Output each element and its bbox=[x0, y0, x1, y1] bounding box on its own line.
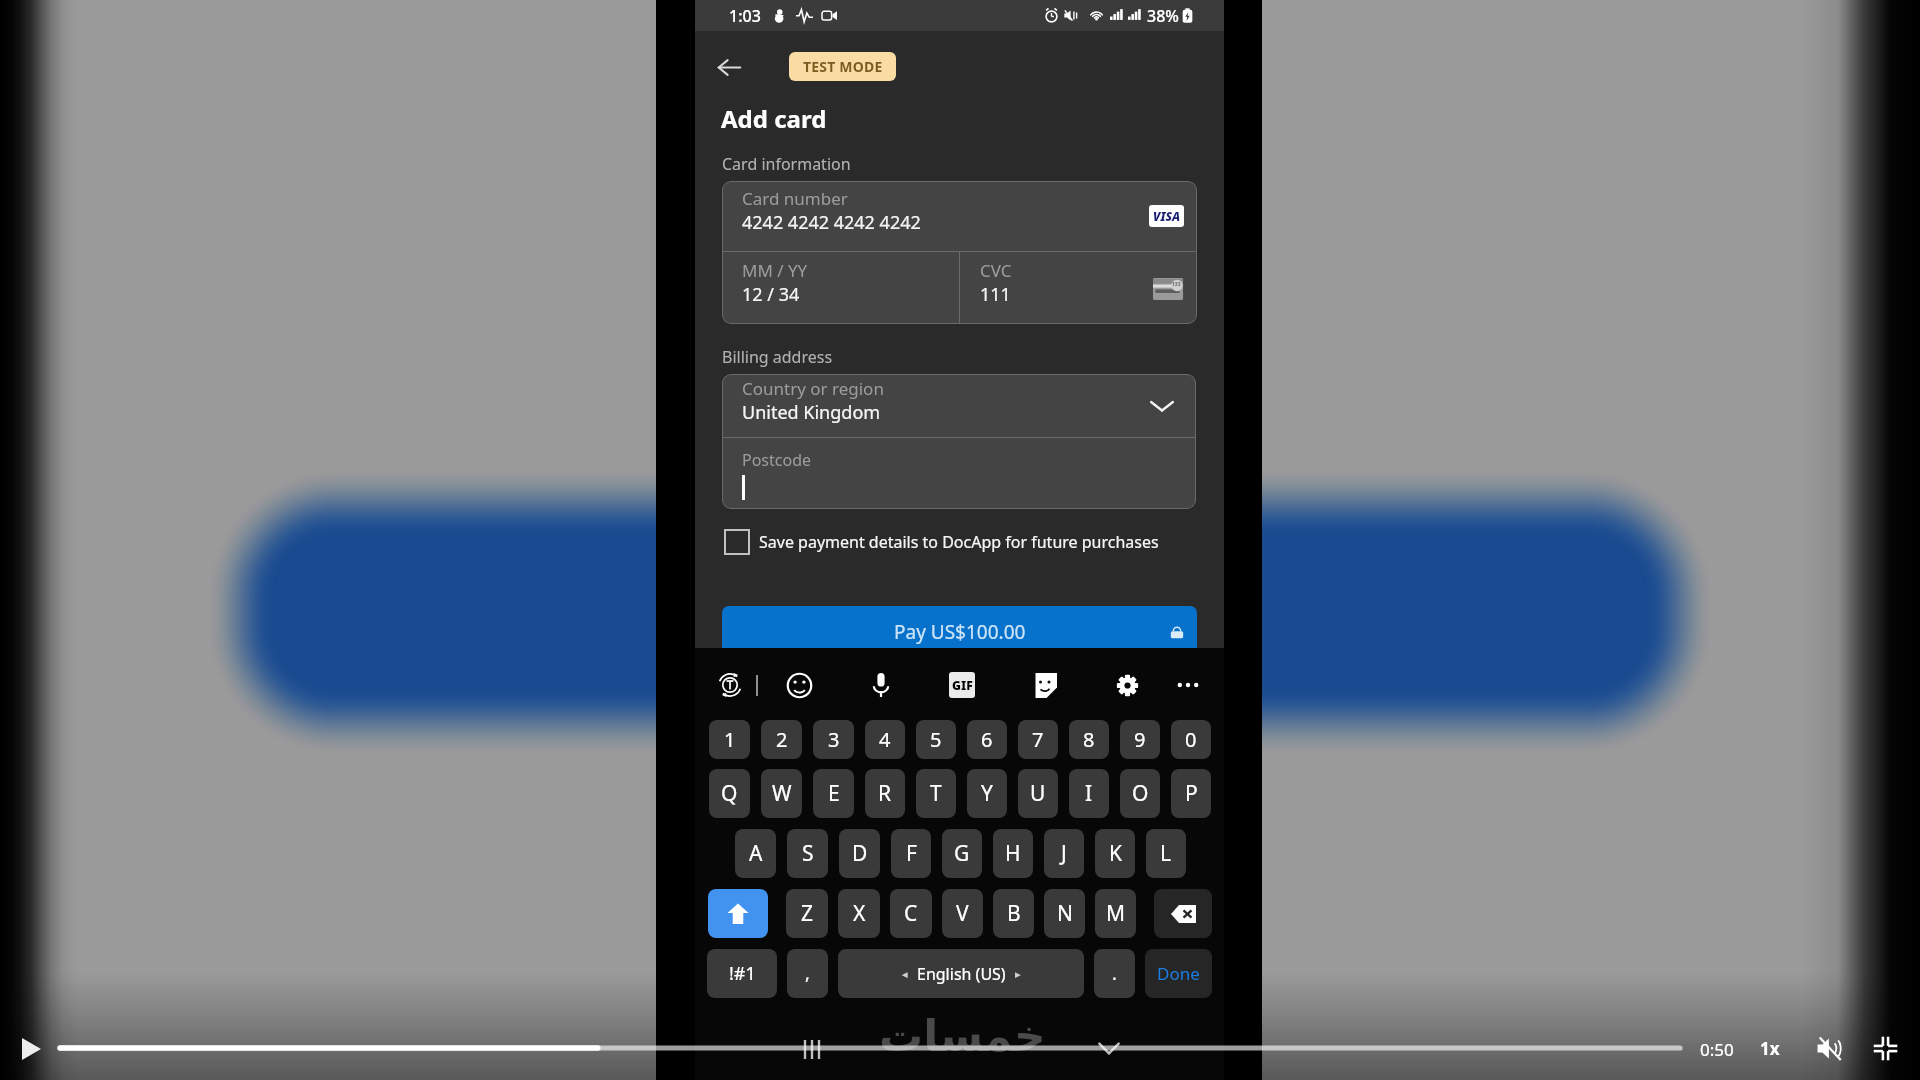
button[interactable]: K bbox=[1095, 829, 1135, 878]
button[interactable]: Shift bbox=[708, 889, 768, 938]
staticText: 7 bbox=[1032, 726, 1044, 753]
staticText: 1 bbox=[724, 726, 736, 753]
button[interactable]: C bbox=[890, 889, 932, 938]
staticText: 9 bbox=[1134, 726, 1146, 753]
button[interactable]: X bbox=[838, 889, 880, 938]
button[interactable]: 3 bbox=[813, 720, 854, 759]
staticText: N bbox=[1057, 899, 1073, 928]
staticText: K bbox=[1109, 839, 1122, 868]
button[interactable]: J bbox=[1044, 829, 1084, 878]
button[interactable]: B bbox=[993, 889, 1034, 938]
button[interactable]: TEST MODE bbox=[789, 52, 896, 81]
staticText: Y bbox=[981, 779, 993, 808]
staticText: 0 bbox=[1185, 726, 1197, 753]
button[interactable]: GIF bbox=[949, 672, 975, 698]
staticText: G bbox=[954, 839, 970, 868]
button[interactable]: E bbox=[813, 769, 854, 818]
button[interactable]: More options bbox=[1172, 669, 1204, 701]
button[interactable]: U bbox=[1018, 769, 1058, 818]
staticText: E bbox=[828, 779, 840, 808]
staticText: Save payment details to DocApp for futur… bbox=[759, 531, 1159, 553]
staticText: W bbox=[772, 779, 792, 808]
staticText: !#1 bbox=[729, 961, 756, 986]
button[interactable]: Unmute bbox=[1813, 1031, 1847, 1065]
button[interactable]: 1 bbox=[709, 720, 750, 759]
button[interactable]: Postcode bbox=[722, 438, 1196, 509]
button[interactable]: Y bbox=[967, 769, 1007, 818]
button[interactable]: L bbox=[1146, 829, 1186, 878]
staticText: C bbox=[904, 899, 918, 928]
button[interactable]: D bbox=[839, 829, 880, 878]
button[interactable]: N bbox=[1044, 889, 1085, 938]
button[interactable]: Q bbox=[709, 769, 750, 818]
button[interactable]: !#1 bbox=[707, 949, 777, 998]
staticText: Q bbox=[721, 779, 738, 808]
button[interactable]: H bbox=[993, 829, 1033, 878]
button[interactable]: MM / YY bbox=[722, 252, 959, 324]
button[interactable]: 2 bbox=[761, 720, 802, 759]
button[interactable]: 8 bbox=[1069, 720, 1109, 759]
staticText: United Kingdom bbox=[742, 400, 881, 425]
staticText: VISA bbox=[1153, 208, 1181, 224]
button[interactable]: M bbox=[1095, 889, 1136, 938]
button[interactable]: O bbox=[1120, 769, 1160, 818]
button[interactable]: Card number bbox=[722, 181, 1197, 251]
staticText: H bbox=[1005, 839, 1021, 868]
staticText: خمسات bbox=[879, 1010, 1046, 1061]
button[interactable]: W bbox=[761, 769, 802, 818]
staticText: Add card bbox=[721, 102, 827, 135]
button[interactable]: . bbox=[1094, 949, 1135, 998]
staticText: , bbox=[805, 961, 810, 986]
button[interactable]: Seek bbox=[56, 1036, 1684, 1060]
staticText: 1:03 bbox=[729, 5, 761, 27]
button[interactable]: 4 bbox=[865, 720, 905, 759]
button[interactable]: 6 bbox=[967, 720, 1007, 759]
button[interactable]: Save payment details to DocApp for futur… bbox=[724, 527, 1164, 556]
button[interactable]: Translate bbox=[714, 669, 746, 701]
button[interactable]: R bbox=[865, 769, 905, 818]
button[interactable]: CVC bbox=[960, 252, 1197, 324]
button[interactable]: Pay US$100.00 bbox=[722, 606, 1197, 658]
staticText: 38% bbox=[1147, 5, 1179, 27]
button[interactable]: Voice input bbox=[865, 669, 897, 701]
button[interactable]: 0 bbox=[1171, 720, 1211, 759]
button[interactable]: 5 bbox=[916, 720, 956, 759]
button[interactable]: ◂ bbox=[838, 949, 1084, 998]
button[interactable]: V bbox=[942, 889, 983, 938]
button[interactable]: I bbox=[1069, 769, 1109, 818]
staticText: 4242 4242 4242 4242 bbox=[742, 210, 921, 235]
button[interactable]: A bbox=[735, 829, 776, 878]
button[interactable]: Country or region bbox=[722, 374, 1196, 437]
button[interactable]: Back bbox=[712, 50, 746, 84]
staticText: Postcode bbox=[742, 449, 812, 471]
staticText: 133 bbox=[1172, 281, 1181, 288]
button[interactable]: G bbox=[942, 829, 982, 878]
button[interactable]: 7 bbox=[1018, 720, 1058, 759]
staticText: 111 bbox=[980, 282, 1011, 307]
staticText: J bbox=[1061, 839, 1067, 868]
button[interactable]: F bbox=[891, 829, 931, 878]
button[interactable]: S bbox=[787, 829, 828, 878]
staticText: F bbox=[906, 839, 917, 868]
button[interactable]: Play bbox=[12, 1030, 50, 1068]
button[interactable]: T bbox=[916, 769, 956, 818]
button[interactable]: Done bbox=[1145, 949, 1212, 998]
button[interactable]: Backspace bbox=[1154, 889, 1212, 938]
staticText: TEST MODE bbox=[803, 57, 883, 76]
button[interactable]: 1x bbox=[1760, 1032, 1780, 1064]
staticText: X bbox=[853, 899, 866, 928]
button[interactable]: , bbox=[787, 949, 828, 998]
button[interactable]: Stickers bbox=[1028, 669, 1060, 701]
staticText: B bbox=[1007, 899, 1021, 928]
button[interactable]: Exit fullscreen bbox=[1868, 1031, 1902, 1065]
staticText: R bbox=[878, 779, 892, 808]
staticText: D bbox=[852, 839, 868, 868]
staticText: Card information bbox=[722, 153, 851, 175]
button[interactable]: 9 bbox=[1120, 720, 1160, 759]
staticText: L bbox=[1160, 839, 1172, 868]
button[interactable]: P bbox=[1171, 769, 1211, 818]
staticText: V bbox=[956, 899, 969, 928]
button[interactable]: Emoji bbox=[783, 669, 815, 701]
button[interactable]: Settings bbox=[1111, 669, 1143, 701]
button[interactable]: Z bbox=[786, 889, 828, 938]
